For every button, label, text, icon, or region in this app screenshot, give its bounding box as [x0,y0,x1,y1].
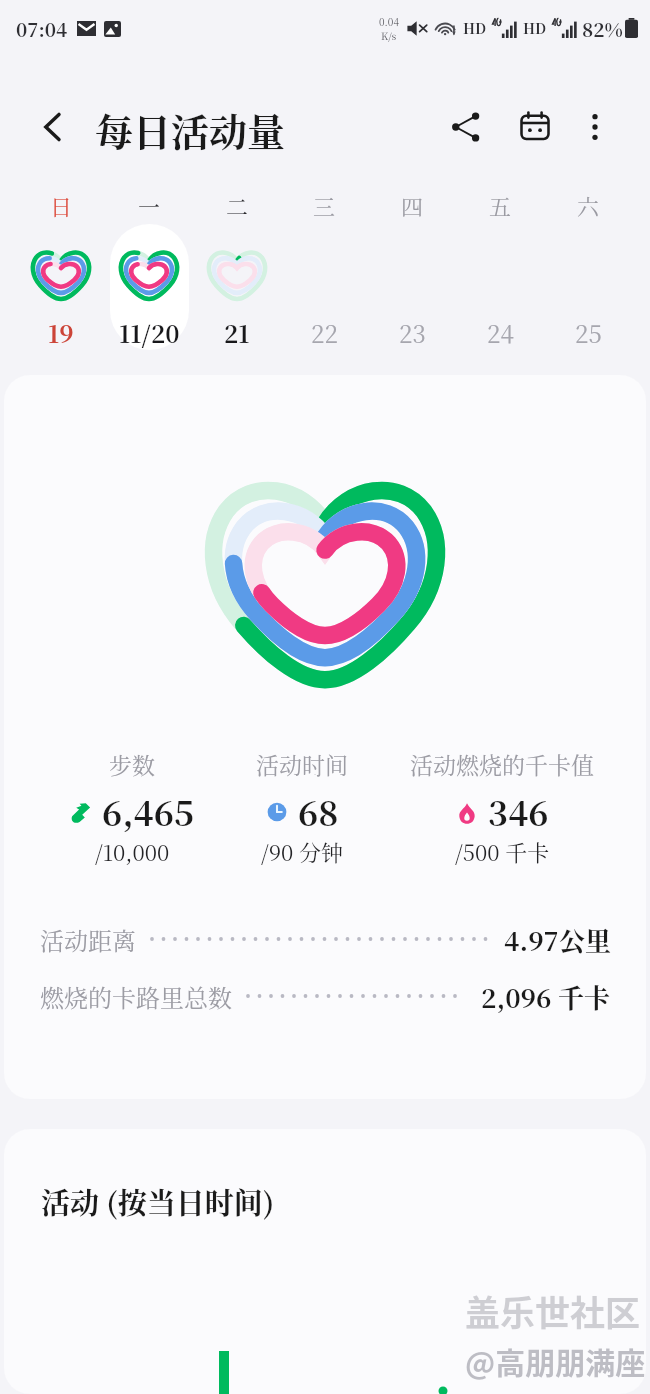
staticText: 11/20 [119,315,180,349]
button[interactable]: 一 [105,182,193,375]
staticText: 六 [577,190,600,222]
staticText: @高朋朋满座 [465,1339,646,1382]
staticText: /10,000 [95,836,170,868]
staticText: 82% [582,15,623,42]
staticText: 22 [311,315,338,349]
button[interactable]: More options [563,95,627,159]
staticText: 每日活动量 [95,102,286,157]
staticText: 三 [313,190,336,222]
staticText: 盖乐世社区 [465,1285,641,1336]
button[interactable]: 燃烧的卡路里总数 [4,972,646,1020]
staticText: /90 分钟 [261,836,343,868]
button[interactable]: 活动时间 [192,748,412,868]
button[interactable]: 六 [544,182,632,375]
staticText: 19 [48,315,74,349]
staticText: 0.04 [379,14,399,28]
staticText: 23 [399,315,426,349]
button[interactable]: Share [434,95,498,159]
staticText: 活动燃烧的千卡值 [410,748,594,781]
button[interactable]: Back [21,95,85,159]
staticText: 24 [487,315,514,349]
staticText: 二 [226,190,249,222]
button[interactable]: 四 [368,182,456,375]
button[interactable]: 二 [193,182,281,375]
staticText: 五 [489,190,512,222]
staticText: 6,465 [102,787,195,836]
button[interactable]: 活动 (按当日时间) [41,1181,275,1223]
button[interactable]: 活动距离 [4,915,646,963]
button[interactable]: 日 [17,182,105,375]
staticText: K/s [381,28,397,42]
staticText: HD [463,18,487,38]
staticText: 2,096 千卡 [481,978,611,1015]
staticText: 68 [298,787,339,836]
staticText: 活动时间 [256,748,348,781]
staticText: 4.97公里 [504,921,611,958]
button[interactable]: 三 [280,182,368,375]
staticText: 一 [138,190,161,222]
staticText: /500 千卡 [455,836,550,868]
staticText: 21 [224,315,250,349]
staticText: 07:04 [16,15,68,42]
staticText: HD [523,18,547,38]
staticText: 燃烧的卡路里总数 [40,979,232,1013]
staticText: 日 [50,190,73,222]
button[interactable]: 步数 [22,748,242,868]
staticText: 四 [401,190,424,222]
button[interactable]: 活动燃烧的千卡值 [392,748,612,868]
staticText: 25 [575,315,602,349]
button[interactable]: 五 [456,182,544,375]
staticText: 346 [488,787,549,836]
staticText: 活动距离 [40,922,136,956]
staticText: 步数 [109,748,155,781]
button[interactable]: Calendar [503,94,567,158]
